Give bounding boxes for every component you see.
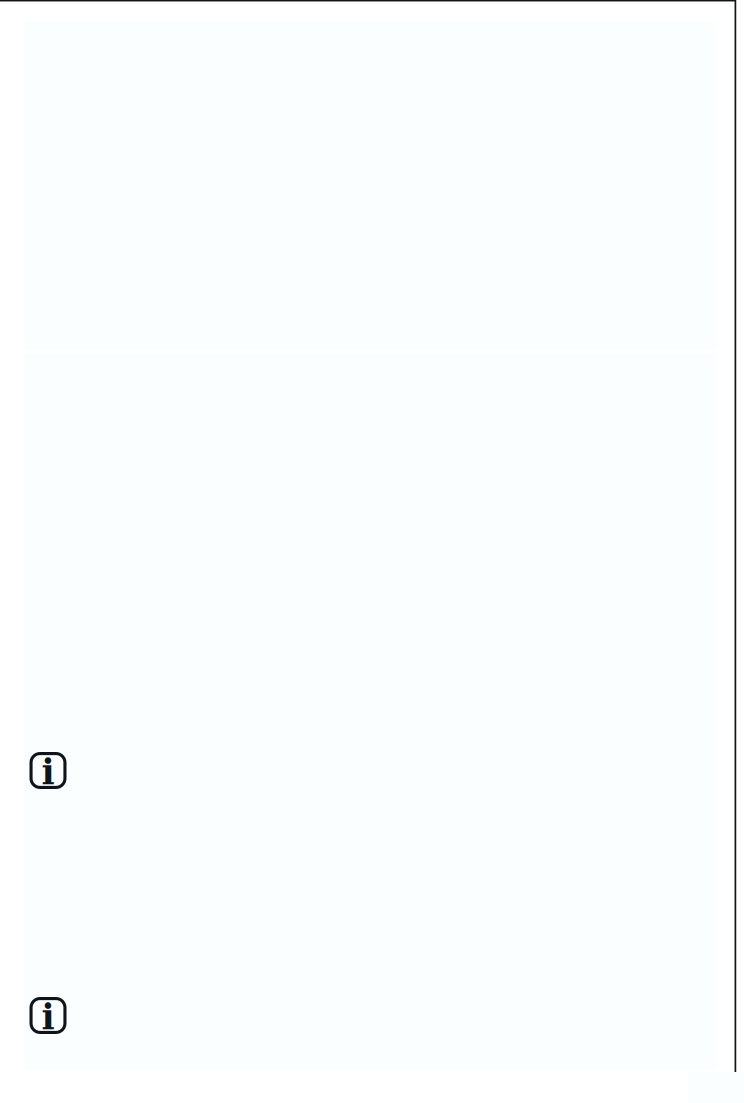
button[interactable]: More information xyxy=(29,997,66,1034)
staticText: i xyxy=(41,752,54,792)
staticText: i xyxy=(41,997,54,1037)
button[interactable]: More information xyxy=(29,752,66,789)
